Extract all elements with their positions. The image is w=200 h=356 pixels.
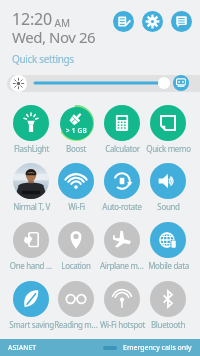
staticText: Quick memo: [146, 143, 191, 154]
button[interactable]: Auto brightness: [173, 75, 189, 91]
staticText: One hand o…: [8, 260, 54, 271]
staticText: Wi-Fi: [68, 201, 85, 212]
staticText: Airplane mo…: [99, 260, 145, 271]
staticText: Sound: [157, 201, 180, 212]
button[interactable]: Quick memo: [145, 105, 191, 154]
button[interactable]: Nirmal T, V: [8, 163, 54, 212]
button[interactable]: Sound: [145, 163, 191, 212]
staticText: AM: [52, 16, 71, 30]
staticText: Quick settings: [12, 52, 74, 66]
staticText: Emergency calls only: [123, 343, 192, 353]
button[interactable]: Auto-rotate: [99, 163, 145, 212]
staticText: 12:20: [12, 8, 52, 30]
button[interactable]: Notifications: [171, 11, 192, 32]
button[interactable]: Settings: [142, 11, 163, 32]
button[interactable]: FlashLight: [8, 105, 54, 154]
staticText: Smart saving: [9, 319, 54, 330]
staticText: Nirmal T, V: [13, 201, 50, 212]
staticText: Reading mo…: [53, 319, 99, 330]
button[interactable]: Calculator: [99, 105, 145, 154]
button[interactable]: Wi-Fi: [53, 163, 99, 212]
button[interactable]: > 1 GB: [53, 105, 99, 154]
staticText: ASIANET: [8, 343, 37, 353]
button[interactable]: Location: [53, 222, 99, 271]
staticText: Bluetooth: [151, 319, 185, 330]
staticText: Mobile data: [148, 260, 189, 271]
button[interactable]: Bluetooth: [145, 281, 191, 330]
button[interactable]: Airplane mo…: [99, 222, 145, 271]
button[interactable]: Reading mo…: [53, 281, 99, 330]
button[interactable]: Brightness: [10, 75, 27, 92]
staticText: FlashLight: [14, 143, 49, 154]
staticText: Wi-Fi hotspot: [100, 319, 145, 330]
button[interactable]: Mobile data: [145, 222, 191, 271]
staticText: > 1 GB: [66, 126, 87, 135]
button[interactable]: Smart saving: [8, 281, 54, 330]
staticText: Location: [61, 260, 91, 271]
button[interactable]: One hand o…: [8, 222, 54, 271]
button[interactable]: Wi-Fi hotspot: [99, 281, 145, 330]
button[interactable]: Edit: [113, 11, 134, 32]
staticText: Boost: [66, 143, 86, 154]
staticText: Calculator: [105, 143, 140, 154]
staticText: Auto-rotate: [102, 201, 142, 212]
staticText: Wed, Nov 26: [12, 27, 96, 47]
